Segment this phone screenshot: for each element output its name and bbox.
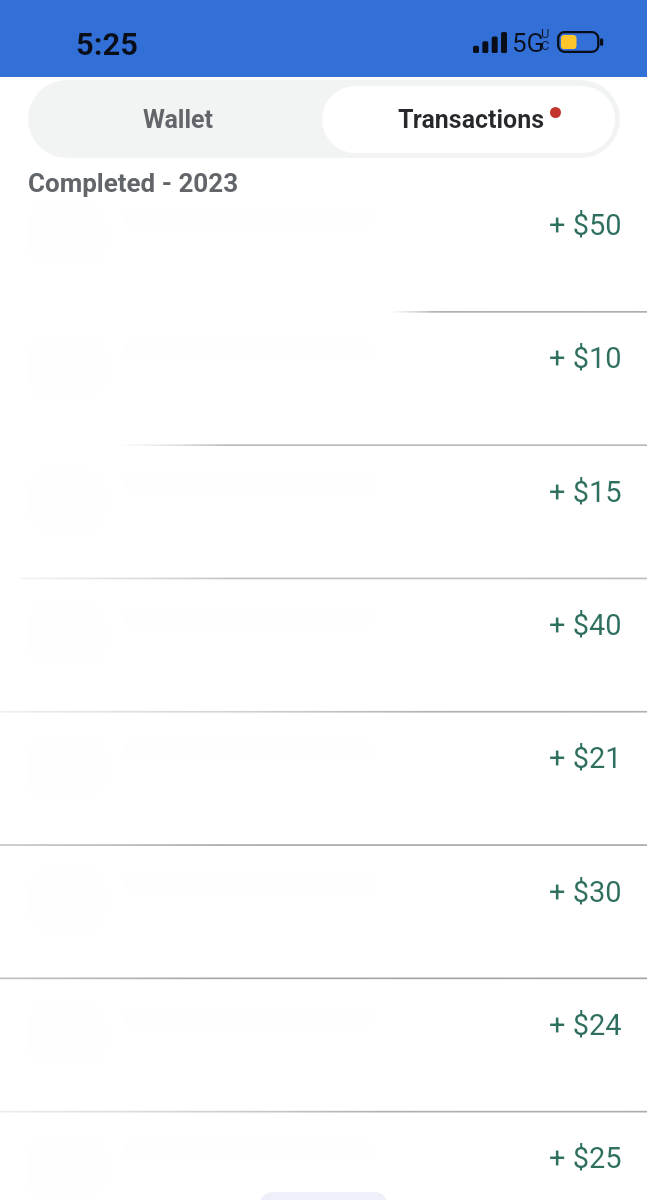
button[interactable]: Wallet <box>31 80 325 158</box>
staticText: + $15 <box>549 475 622 509</box>
staticText: + $30 <box>549 875 622 909</box>
button[interactable]: + $24 <box>0 997 647 1130</box>
staticText: Wallet <box>143 105 214 134</box>
button[interactable]: + $30 <box>0 864 647 997</box>
other: Cellular signal strength <box>473 32 507 53</box>
staticText: Transactions <box>398 105 545 134</box>
staticText: + $24 <box>549 1008 622 1042</box>
staticText: Completed - 2023 <box>28 168 239 198</box>
staticText: + $25 <box>549 1141 622 1175</box>
button[interactable]: + $15 <box>0 464 647 597</box>
button[interactable]: + $10 <box>0 330 647 463</box>
button[interactable]: + $25 <box>0 1130 647 1200</box>
button[interactable]: + $40 <box>0 597 647 730</box>
other: Battery low power mode <box>557 31 604 53</box>
staticText: 5G <box>512 28 545 58</box>
staticText: U <box>541 26 550 41</box>
button[interactable]: + $50 <box>0 197 647 330</box>
button[interactable]: + $21 <box>0 730 647 863</box>
staticText: + $21 <box>549 741 622 775</box>
staticText: + $50 <box>549 208 622 242</box>
staticText: + $40 <box>549 608 622 642</box>
staticText: 5:25 <box>76 26 139 62</box>
staticText: C <box>541 38 550 53</box>
button[interactable]: Transactions <box>322 86 615 153</box>
staticText: + $10 <box>549 341 622 375</box>
